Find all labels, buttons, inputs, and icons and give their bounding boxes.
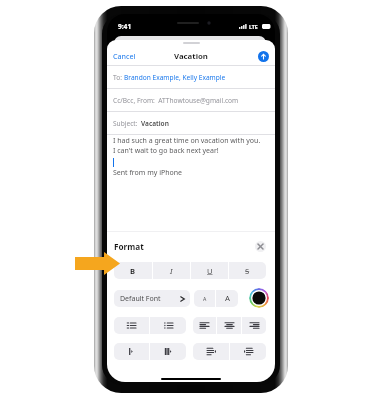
- button[interactable]: Align centre: [217, 317, 241, 334]
- staticText: A: [203, 295, 207, 302]
- button[interactable]: Increase font size: [216, 290, 238, 307]
- staticText: I: [170, 266, 173, 276]
- button[interactable]: Cancel: [107, 48, 142, 64]
- staticText: Subject:: [113, 119, 141, 128]
- staticText: Cancel: [113, 51, 136, 61]
- button[interactable]: Bulleted list: [150, 317, 186, 334]
- button[interactable]: Decrease font size: [194, 290, 215, 307]
- staticText: S: [245, 266, 250, 276]
- staticText: Format: [114, 241, 144, 252]
- staticText: U: [207, 266, 213, 276]
- staticText: Cc/Bcc, From: ATThowtouse@gmail.com: [113, 96, 239, 105]
- button[interactable]: S: [229, 262, 266, 279]
- staticText: 9:41: [118, 22, 132, 31]
- button[interactable]: To:: [107, 66, 275, 88]
- staticText: I can't wait to go back next year!: [113, 146, 219, 156]
- staticText: Brandon Example, Kelly Example: [124, 73, 226, 82]
- button[interactable]: Align right: [242, 317, 266, 334]
- button[interactable]: I: [153, 262, 190, 279]
- staticText: A: [225, 293, 230, 304]
- button[interactable]: U: [191, 262, 228, 279]
- button[interactable]: B: [114, 262, 152, 279]
- button[interactable]: Send: [258, 51, 269, 62]
- button[interactable]: Close format bar: [255, 241, 266, 252]
- button[interactable]: Subject:: [107, 112, 275, 134]
- button[interactable]: Triple line spacing: [150, 343, 186, 360]
- staticText: Sent from my iPhone: [113, 168, 183, 178]
- button[interactable]: Single line spacing: [114, 343, 149, 360]
- staticText: Default Font: [120, 294, 161, 304]
- staticText: LTE: [249, 23, 258, 30]
- button[interactable]: Align left: [193, 317, 216, 334]
- button[interactable]: Increase indent: [230, 343, 266, 360]
- button[interactable]: Default Font: [114, 290, 190, 307]
- button[interactable]: Numbered list: [114, 317, 149, 334]
- button[interactable]: Decrease indent: [193, 343, 229, 360]
- button[interactable]: Cc/Bcc, From: ATThowtouse@gmail.com: [107, 89, 275, 111]
- staticText: I had such a great time on vacation with…: [113, 136, 261, 146]
- staticText: Vacation: [174, 51, 208, 62]
- staticText: Vacation: [141, 119, 169, 128]
- button[interactable]: Text colour: [249, 288, 269, 308]
- staticText: B: [130, 266, 136, 276]
- staticText: To:: [113, 73, 124, 82]
